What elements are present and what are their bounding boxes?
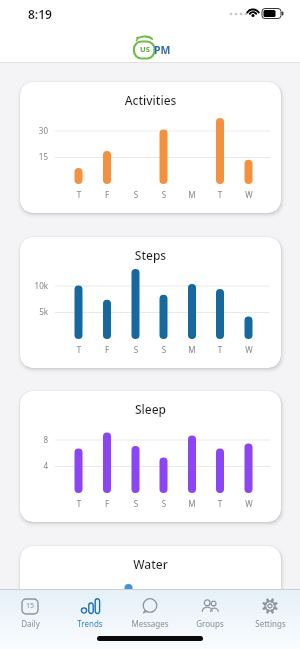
staticText: S xyxy=(156,344,172,355)
button[interactable]: Groups xyxy=(180,589,240,629)
staticText: Water xyxy=(20,556,281,572)
staticText: Trends xyxy=(77,618,103,629)
staticText: W xyxy=(241,344,257,355)
staticText: M xyxy=(184,344,200,355)
staticText: Steps xyxy=(20,247,281,263)
staticText: T xyxy=(212,344,228,355)
staticText: 4 xyxy=(28,460,48,471)
staticText: 5k xyxy=(28,306,48,317)
staticText: S xyxy=(156,189,172,200)
staticText: Daily xyxy=(21,618,40,629)
staticText: F xyxy=(99,344,115,355)
staticText xyxy=(28,589,48,600)
staticText: Groups xyxy=(196,618,224,629)
staticText: Activities xyxy=(20,92,281,108)
staticText: 30 xyxy=(28,125,48,136)
staticText: S xyxy=(128,189,144,200)
staticText: T xyxy=(212,498,228,509)
staticText: T xyxy=(71,189,87,200)
staticText: PM xyxy=(154,43,171,57)
button[interactable]: Sleep xyxy=(20,391,281,522)
staticText: Settings xyxy=(255,618,286,629)
staticText: 15 xyxy=(28,151,48,162)
staticText: F xyxy=(99,189,115,200)
button[interactable]: 15 xyxy=(0,589,60,629)
button[interactable]: Activities xyxy=(20,82,281,213)
staticText: T xyxy=(212,189,228,200)
staticText: US xyxy=(138,44,152,54)
button[interactable]: Steps xyxy=(20,237,281,368)
staticText: T xyxy=(71,344,87,355)
staticText: S xyxy=(128,344,144,355)
staticText: 10k xyxy=(28,280,48,291)
button[interactable]: Settings xyxy=(240,589,300,629)
staticText: Messages xyxy=(131,618,169,629)
staticText: 15 xyxy=(20,601,40,611)
staticText: S xyxy=(128,498,144,509)
staticText: M xyxy=(184,498,200,509)
button[interactable]: Water xyxy=(20,546,281,649)
staticText: Sleep xyxy=(20,401,281,417)
staticText: S xyxy=(156,498,172,509)
button[interactable]: Messages xyxy=(120,589,180,629)
staticText: 8:19 xyxy=(28,6,52,22)
staticText: M xyxy=(184,189,200,200)
staticText xyxy=(28,615,48,626)
staticText: F xyxy=(99,498,115,509)
staticText: W xyxy=(241,498,257,509)
staticText: 8 xyxy=(28,434,48,445)
staticText: T xyxy=(71,498,87,509)
staticText: W xyxy=(241,189,257,200)
button[interactable]: Trends xyxy=(60,589,120,629)
